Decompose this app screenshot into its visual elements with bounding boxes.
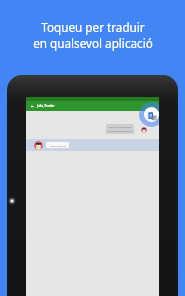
staticText: Yes I'd love to! [50, 144, 66, 147]
other: Back [31, 105, 34, 108]
button[interactable]: Back [26, 101, 159, 111]
staticText: Are you coming to my birthday this weeke… [108, 126, 132, 133]
button[interactable]: Yes I'd love to! [26, 139, 159, 151]
button[interactable]: Are you coming to my birthday this weeke… [106, 124, 134, 134]
staticText: Toqueu per traduir [41, 19, 145, 35]
staticText: en qualsevol aplicació [33, 35, 153, 51]
button[interactable]: Translate [139, 102, 159, 127]
staticText: Julia, Pender [37, 104, 55, 108]
